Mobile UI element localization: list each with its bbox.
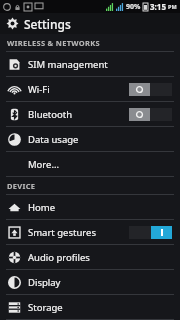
- button[interactable]: Toggle off: [129, 108, 172, 121]
- staticText: Storage: [28, 301, 63, 314]
- staticText: Audio profiles: [28, 251, 90, 264]
- staticText: PM: [168, 3, 177, 10]
- button[interactable]: Display: [0, 270, 180, 294]
- button[interactable]: Storage: [0, 295, 180, 319]
- staticText: Settings: [24, 16, 71, 32]
- staticText: More...: [28, 158, 60, 171]
- staticText: 3:15: [150, 1, 166, 12]
- button[interactable]: Data usage: [0, 127, 180, 151]
- button[interactable]: Audio profiles: [0, 245, 180, 269]
- button[interactable]: More...: [0, 152, 180, 176]
- button[interactable]: Home: [0, 195, 180, 219]
- staticText: SIM management: [28, 58, 108, 71]
- staticText: WIRELESS & NETWORKS: [7, 38, 100, 48]
- button[interactable]: Toggle on: [129, 226, 172, 239]
- button[interactable]: SIM management: [0, 52, 180, 76]
- button[interactable]: Bluetooth: [0, 102, 180, 126]
- button[interactable]: Wi-Fi: [0, 77, 180, 101]
- staticText: Home: [28, 201, 56, 214]
- staticText: Data usage: [28, 133, 79, 146]
- staticText: 90%: [126, 2, 141, 12]
- staticText: Wi-Fi: [28, 83, 50, 96]
- button[interactable]: Settings: [0, 13, 180, 34]
- button[interactable]: Toggle off: [129, 83, 172, 96]
- staticText: Display: [28, 276, 61, 289]
- staticText: DEVICE: [7, 181, 36, 191]
- staticText: Bluetooth: [28, 108, 73, 121]
- button[interactable]: Smart gestures: [0, 220, 180, 244]
- staticText: Smart gestures: [28, 226, 96, 239]
